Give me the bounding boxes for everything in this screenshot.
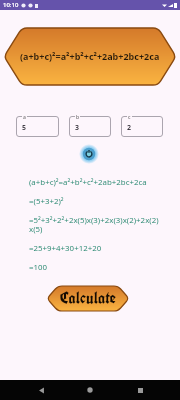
staticText: =100 <box>29 262 48 273</box>
staticText: (a+b+c)²=a²+b²+c²+2ab+2bc+2ca <box>29 177 147 188</box>
staticText: Calculate <box>60 288 117 309</box>
button[interactable]: Recents <box>131 381 149 399</box>
button[interactable]: Reset <box>79 144 99 164</box>
staticText: =(5+3+2)² <box>29 196 64 207</box>
staticText: c <box>128 114 131 121</box>
button[interactable]: c <box>121 116 163 137</box>
staticText: b <box>76 114 80 121</box>
button[interactable]: Back <box>32 381 50 399</box>
staticText: 3 <box>75 123 80 133</box>
staticText: =25+9+4+30+12+20 <box>29 243 102 254</box>
staticText: =5²+3²+2²+2x(5)x(3)+2x(3)x(2)+2x(2)x(5) <box>29 215 159 234</box>
button[interactable]: Calculate <box>47 286 129 311</box>
staticText: 2 <box>127 123 132 133</box>
staticText: 10:10 <box>3 1 19 9</box>
staticText: 5 <box>22 123 27 133</box>
staticText: a <box>23 114 26 121</box>
button[interactable]: b <box>69 116 111 137</box>
staticText: (a+b+c)²=a²+b²+c²+2ab+2bc+2ca <box>20 50 160 62</box>
button[interactable]: a <box>16 116 59 137</box>
button[interactable]: Home <box>81 381 99 399</box>
